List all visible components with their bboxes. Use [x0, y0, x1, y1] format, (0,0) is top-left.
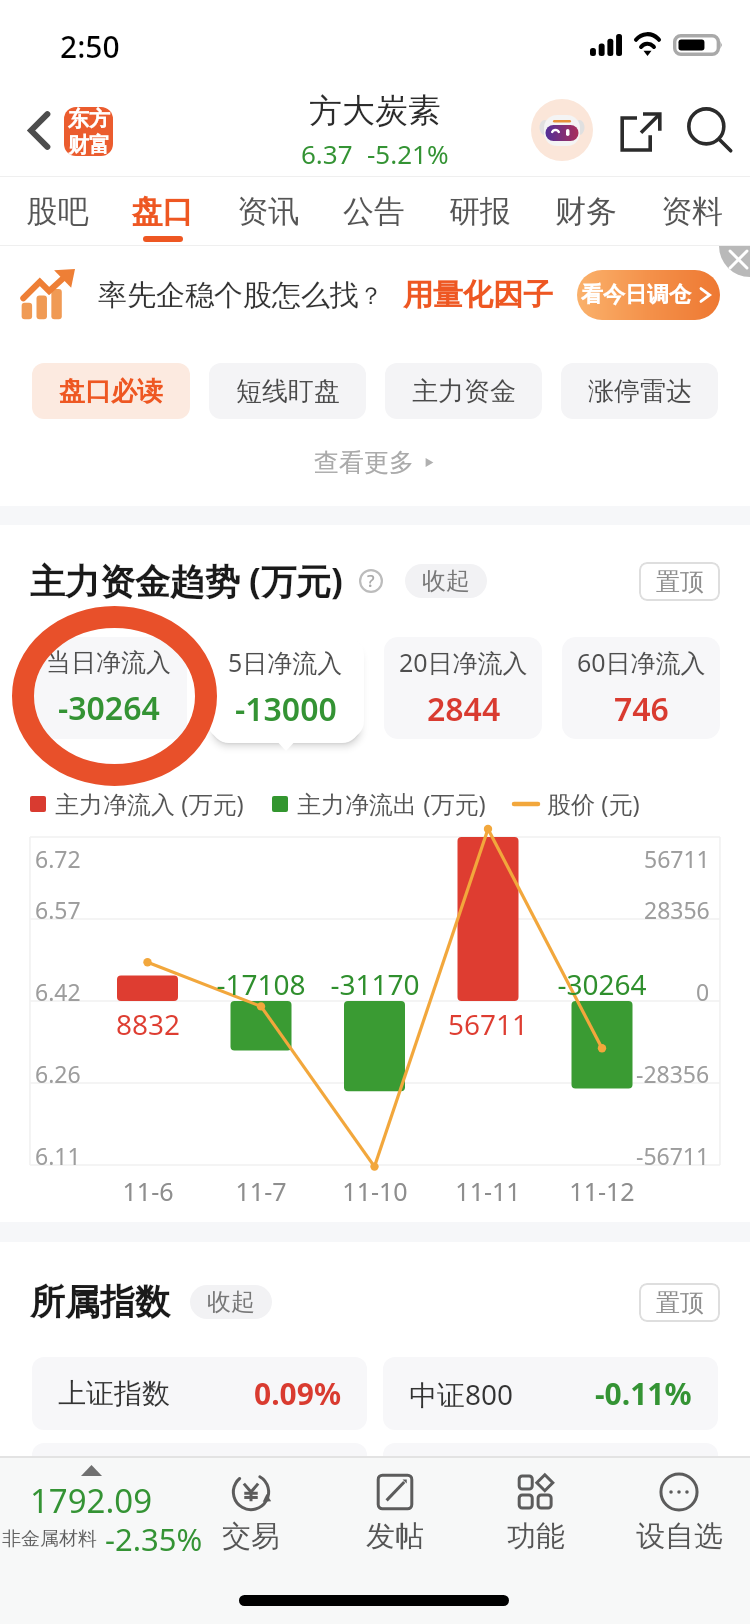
button[interactable]: 设自选	[617, 1456, 741, 1576]
button[interactable]: 财务	[533, 176, 639, 246]
staticText: 主力净流出 (万元)	[297, 787, 486, 820]
staticText: 所属指数	[30, 1280, 170, 1324]
staticText: 股吧	[5, 192, 110, 231]
staticText: 2844	[427, 687, 501, 731]
button[interactable]: 发帖	[333, 1456, 457, 1576]
staticText: 查看更多	[314, 447, 414, 478]
staticText: 研报	[427, 192, 533, 231]
staticText: 主力净流入 (万元)	[55, 787, 244, 820]
staticText: -31170	[305, 965, 445, 1003]
staticText: 11-6	[78, 1174, 218, 1208]
staticText: 发帖	[366, 1518, 424, 1555]
button[interactable]: 20日净流入	[384, 637, 542, 739]
button[interactable]: 置顶	[639, 562, 720, 601]
staticText: 涨停雷达	[588, 375, 692, 408]
button[interactable]: 置顶	[639, 1283, 720, 1322]
staticText: 功能	[507, 1518, 565, 1555]
staticText: 看今日调仓	[581, 281, 691, 309]
button[interactable]: 查看更多	[0, 447, 750, 478]
button[interactable]: 看今日调仓	[577, 270, 720, 320]
button[interactable]: Close banner	[719, 246, 750, 277]
staticText: 主力资金趋势 (万元)	[30, 557, 343, 605]
button[interactable]: AI assistant	[531, 99, 593, 161]
staticText: -5.21%	[367, 136, 449, 171]
staticText: ？	[359, 281, 383, 311]
staticText: -17108	[191, 965, 331, 1003]
staticText: 6.26	[35, 1058, 81, 1089]
staticText: 56711	[418, 1005, 558, 1043]
staticText: 6.72	[35, 843, 81, 874]
button[interactable]: 功能	[474, 1456, 598, 1576]
staticText: 盘口	[110, 192, 215, 231]
staticText: 6.42	[35, 976, 81, 1007]
button[interactable]: 盘口	[110, 176, 215, 246]
button[interactable]: 研报	[427, 176, 533, 246]
staticText: 0.09%	[254, 1373, 341, 1414]
staticText: 20日净流入	[399, 645, 528, 679]
staticText: -0.35%	[244, 1459, 341, 1500]
button[interactable]: 交易	[189, 1456, 313, 1576]
staticText: 财富	[68, 132, 110, 155]
staticText: 2:50	[60, 26, 120, 67]
staticText: 股价 (元)	[547, 787, 640, 820]
staticText: -30264	[532, 965, 672, 1003]
button[interactable]: 股吧	[5, 176, 110, 246]
staticText: 收起	[207, 1287, 255, 1317]
staticText: 5日净流入	[228, 645, 343, 679]
button[interactable]: Help	[359, 569, 383, 593]
staticText: 主力资金	[412, 375, 516, 408]
staticText: 6.57	[35, 894, 81, 925]
staticText: 上证指数	[58, 1376, 170, 1411]
staticText: -56711	[636, 1140, 710, 1171]
button[interactable]: 盘口必读	[32, 363, 190, 419]
button[interactable]: 上证指数	[32, 1357, 367, 1430]
button[interactable]: 中证800	[383, 1357, 718, 1430]
staticText: 资料	[639, 192, 745, 231]
staticText: 11-7	[191, 1174, 331, 1208]
staticText: 8832	[78, 1005, 218, 1043]
staticText: 0	[696, 976, 710, 1007]
staticText: 746	[614, 687, 669, 731]
button[interactable]: 当日净流入	[30, 637, 187, 739]
staticText: -13000	[235, 687, 337, 731]
button[interactable]: 沪深300	[383, 1443, 718, 1516]
button[interactable]: Back	[9, 100, 69, 160]
staticText: 28356	[644, 894, 710, 925]
staticText: 11-12	[532, 1174, 672, 1208]
staticText: 盘口必读	[59, 375, 163, 408]
staticText: 公告	[321, 192, 427, 231]
button[interactable]: Search	[670, 91, 750, 171]
button[interactable]: 资讯	[215, 176, 321, 246]
button[interactable]: 短线盯盘	[209, 363, 366, 419]
staticText: 东方	[68, 107, 110, 132]
button[interactable]: 60日净流入	[562, 637, 720, 739]
button[interactable]: 5日净流入	[207, 637, 364, 739]
button[interactable]: East Money home	[64, 107, 113, 156]
staticText: 短线盯盘	[236, 375, 340, 408]
staticText: 当日净流入	[46, 647, 171, 678]
button[interactable]: 涨停雷达	[561, 363, 718, 419]
staticText: 非金属材料	[2, 1527, 97, 1551]
button[interactable]: 收起	[405, 564, 487, 598]
button[interactable]: 资料	[639, 176, 745, 246]
staticText: 6.11	[35, 1140, 81, 1171]
staticText: 率先企稳个股怎么找	[98, 277, 359, 314]
staticText: 财务	[533, 192, 639, 231]
staticText: 6.37	[301, 136, 353, 171]
staticText: 置顶	[656, 567, 704, 597]
staticText: -0.14%	[595, 1459, 692, 1500]
staticText: 11-11	[418, 1174, 558, 1208]
button[interactable]: 主力资金	[385, 363, 542, 419]
staticText: 60日净流入	[577, 645, 706, 679]
button[interactable]: 收起	[190, 1285, 272, 1319]
staticText: -2.35%	[105, 1518, 203, 1560]
button[interactable]: 深证成指	[32, 1443, 367, 1516]
button[interactable]	[0, 1456, 182, 1576]
button[interactable]: Share	[601, 92, 680, 171]
button[interactable]: 公告	[321, 176, 427, 246]
staticText: 中证800	[409, 1375, 514, 1413]
staticText: -0.11%	[595, 1373, 692, 1414]
staticText: 收起	[422, 566, 470, 596]
staticText: 置顶	[656, 1288, 704, 1318]
staticText: 设自选	[636, 1518, 723, 1555]
